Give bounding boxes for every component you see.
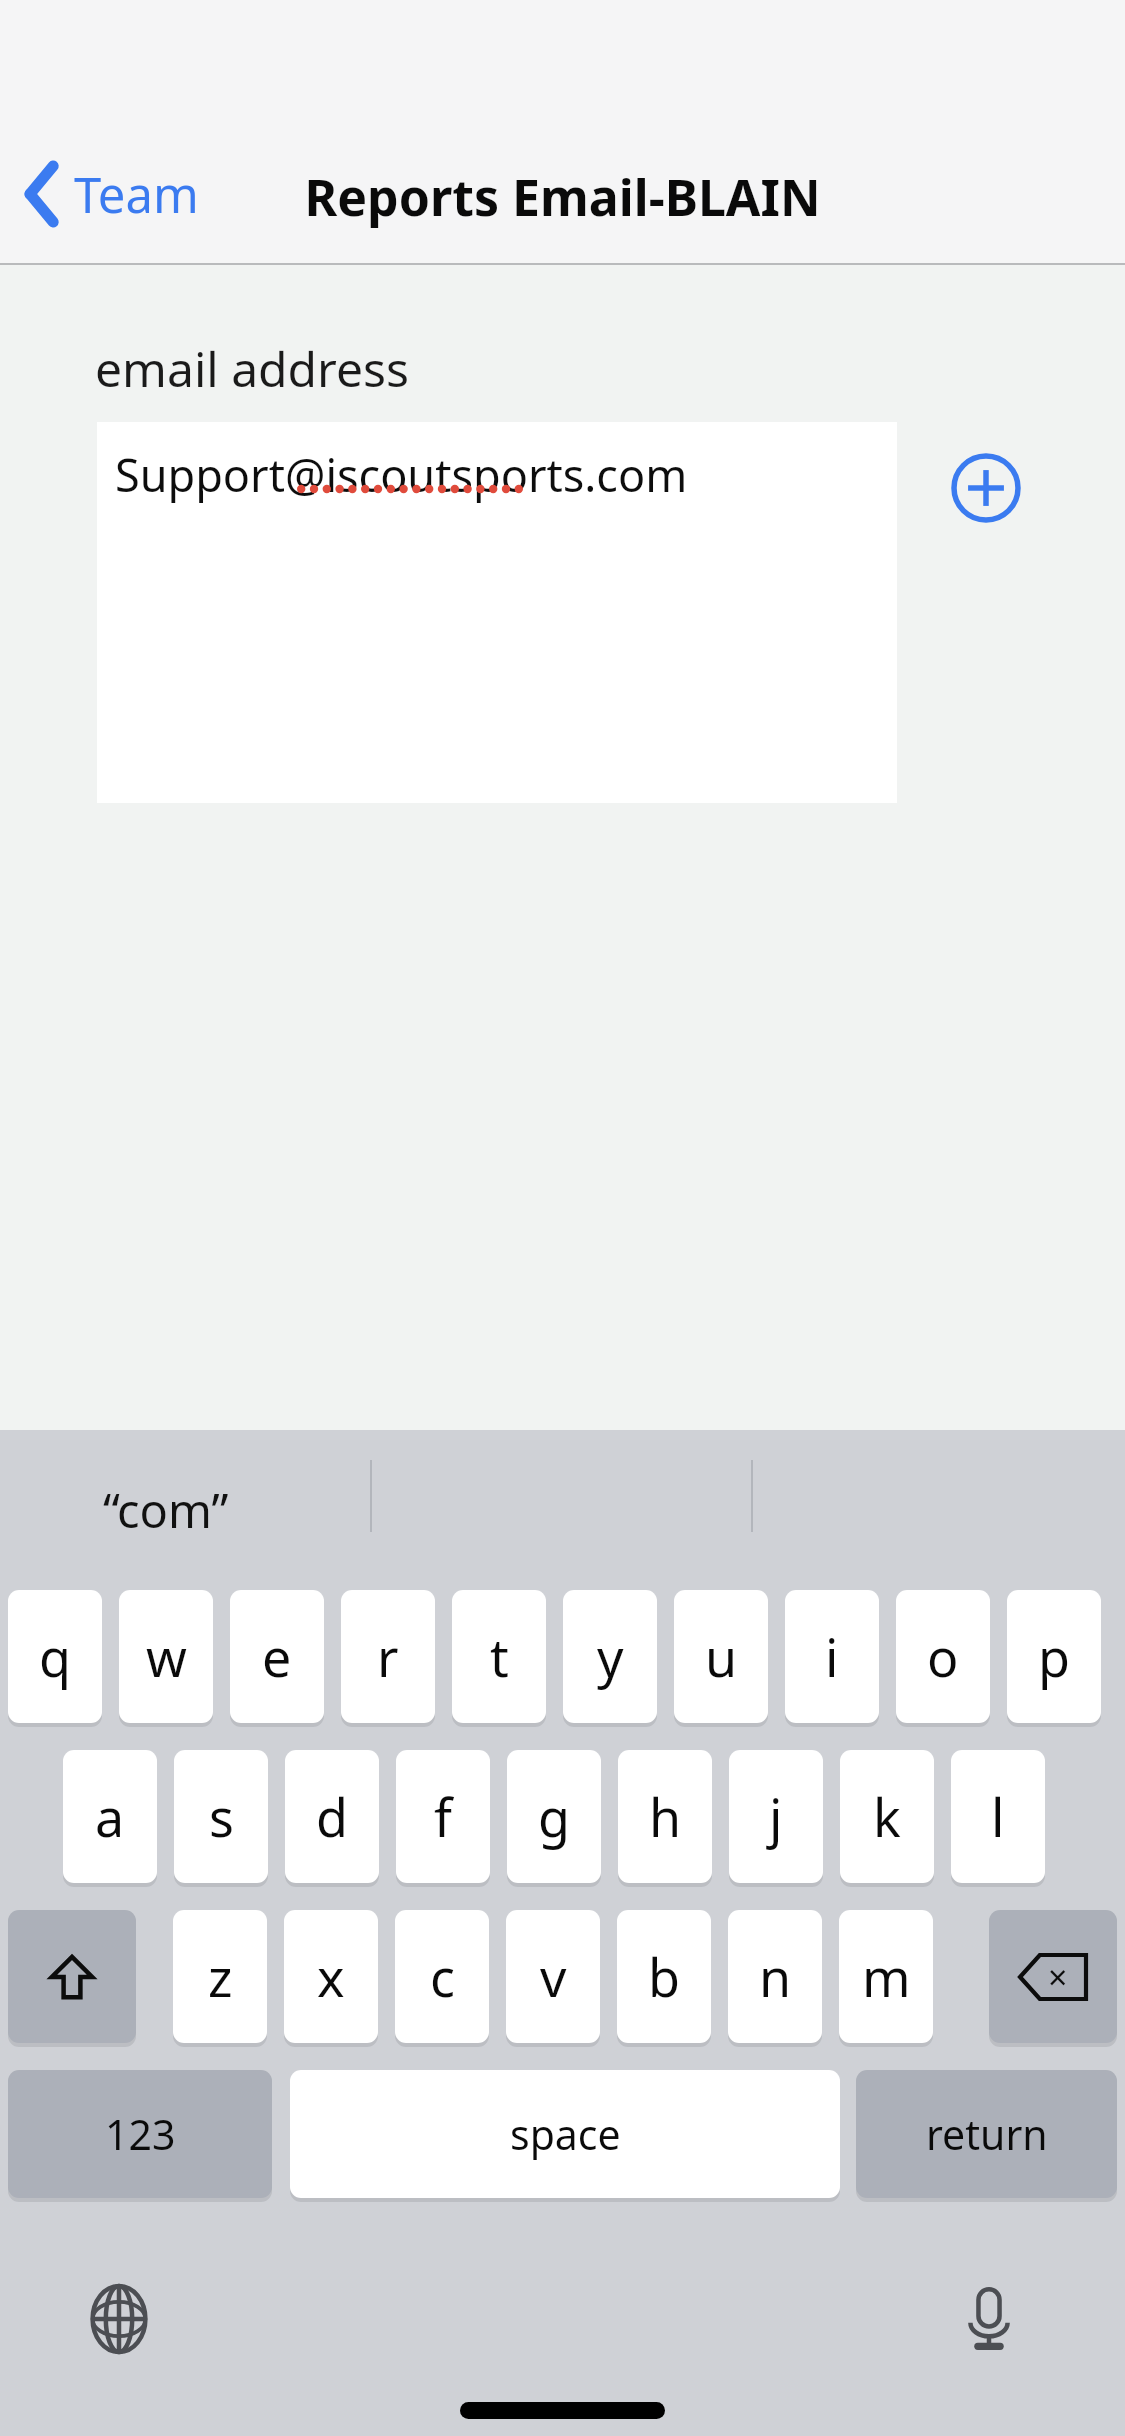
staticText: v (540, 1941, 567, 2012)
staticText: f (434, 1781, 452, 1852)
button[interactable]: r (341, 1590, 435, 1723)
staticText: a (95, 1781, 125, 1852)
button[interactable]: p (1007, 1590, 1101, 1723)
button[interactable]: m (839, 1910, 933, 2043)
staticText: p (1038, 1621, 1070, 1692)
button[interactable]: h (618, 1750, 712, 1883)
button[interactable]: v (506, 1910, 600, 2043)
staticText: c (430, 1941, 455, 2012)
staticText: q (39, 1621, 71, 1692)
button[interactable]: f (396, 1750, 490, 1883)
staticText: y (597, 1621, 624, 1692)
button[interactable]: Support@iscoutsports.com (97, 422, 897, 803)
staticText: space (510, 2106, 621, 2162)
staticText: h (649, 1781, 682, 1852)
button[interactable]: “com” (103, 1478, 229, 1542)
button[interactable]: s (174, 1750, 268, 1883)
button[interactable]: x (284, 1910, 378, 2043)
staticText: l (991, 1781, 1005, 1852)
button[interactable]: i (785, 1590, 879, 1723)
button[interactable]: u (674, 1590, 768, 1723)
button[interactable]: return (856, 2070, 1117, 2198)
button[interactable]: Delete (989, 1910, 1117, 2043)
button[interactable]: n (728, 1910, 822, 2043)
button[interactable]: l (951, 1750, 1045, 1883)
staticText: email address (95, 336, 410, 401)
staticText: w (146, 1621, 187, 1692)
staticText: Reports Email-BLAIN (304, 163, 821, 231)
staticText: s (209, 1781, 234, 1852)
button[interactable]: Team (18, 155, 203, 233)
staticText: r (377, 1621, 399, 1692)
button[interactable]: b (617, 1910, 711, 2043)
staticText: n (759, 1941, 792, 2012)
staticText: k (873, 1781, 901, 1852)
button[interactable]: Shift (8, 1910, 136, 2043)
button[interactable]: g (507, 1750, 601, 1883)
button[interactable]: 123 (8, 2070, 272, 2198)
staticText: m (862, 1941, 911, 2012)
button[interactable]: k (840, 1750, 934, 1883)
staticText: x (317, 1941, 345, 2012)
staticText: b (648, 1941, 680, 2012)
button[interactable]: Dictate (948, 2278, 1030, 2360)
staticText: j (769, 1781, 783, 1852)
staticText: × (1048, 1954, 1068, 2000)
button[interactable]: space (290, 2070, 840, 2198)
button[interactable]: j (729, 1750, 823, 1883)
staticText: d (316, 1781, 348, 1852)
button[interactable]: Add email address (948, 450, 1023, 525)
button[interactable]: c (395, 1910, 489, 2043)
staticText: e (262, 1621, 292, 1692)
button[interactable]: d (285, 1750, 379, 1883)
staticText: u (705, 1621, 738, 1692)
button[interactable]: z (173, 1910, 267, 2043)
staticText: z (208, 1941, 233, 2012)
button[interactable]: q (8, 1590, 102, 1723)
button[interactable]: o (896, 1590, 990, 1723)
staticText: return (926, 2106, 1048, 2162)
staticText: o (927, 1621, 959, 1692)
button[interactable]: a (63, 1750, 157, 1883)
button[interactable]: y (563, 1590, 657, 1723)
staticText: 123 (105, 2106, 176, 2162)
button[interactable]: Switch keyboard (78, 2278, 160, 2360)
button[interactable]: t (452, 1590, 546, 1723)
staticText: Team (74, 161, 199, 228)
staticText: i (825, 1621, 839, 1692)
staticText: t (490, 1621, 509, 1692)
staticText: Support@iscoutsports.com (115, 444, 688, 505)
staticText: g (538, 1781, 570, 1852)
button[interactable]: w (119, 1590, 213, 1723)
button[interactable]: e (230, 1590, 324, 1723)
